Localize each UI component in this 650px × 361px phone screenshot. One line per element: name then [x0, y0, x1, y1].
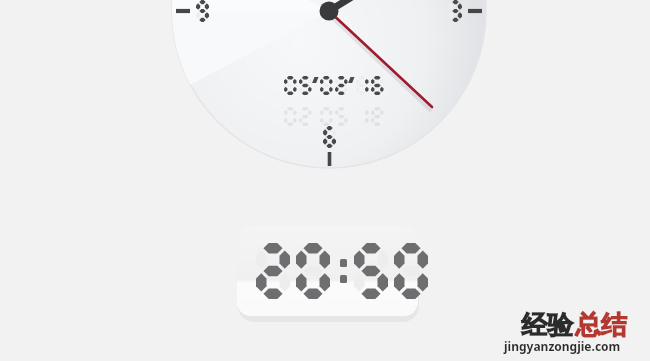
button[interactable]: Analog clock dial	[0, 0, 650, 361]
staticText: jingyanzongjie.com	[504, 338, 621, 354]
staticText: 总结	[575, 309, 627, 342]
button[interactable]: Digital clock 20:50	[0, 0, 650, 361]
staticText: 经验	[521, 309, 573, 342]
